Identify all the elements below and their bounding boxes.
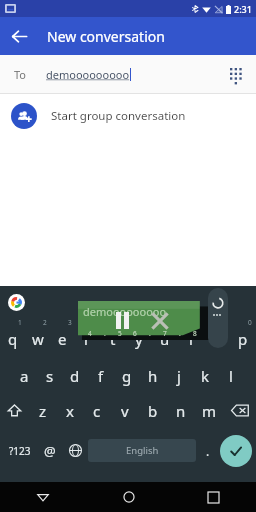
button[interactable]: t bbox=[100, 318, 126, 355]
button[interactable]: Change language bbox=[62, 429, 88, 472]
button[interactable]: j bbox=[166, 355, 192, 392]
button[interactable]: p bbox=[230, 318, 256, 355]
button[interactable]: At sign bbox=[37, 429, 62, 472]
staticText: j bbox=[177, 366, 181, 386]
button[interactable]: h bbox=[140, 355, 166, 392]
staticText: 0 bbox=[248, 318, 252, 327]
button[interactable]: Shift bbox=[0, 392, 29, 429]
staticText: l bbox=[229, 366, 233, 386]
staticText: m bbox=[202, 401, 217, 421]
button[interactable]: q bbox=[0, 318, 25, 355]
staticText: e bbox=[58, 329, 67, 349]
staticText: 6 bbox=[133, 329, 137, 338]
staticText: 8 bbox=[196, 318, 200, 327]
button[interactable]: Recents bbox=[171, 482, 256, 512]
staticText: Start group conversation bbox=[51, 108, 186, 124]
staticText: s bbox=[46, 366, 54, 386]
button[interactable]: English bbox=[88, 439, 196, 462]
staticText: z bbox=[39, 401, 47, 421]
button[interactable]: m bbox=[195, 392, 223, 429]
button[interactable]: l bbox=[218, 355, 244, 392]
staticText: 1 bbox=[18, 318, 22, 327]
button[interactable]: z bbox=[29, 392, 56, 429]
staticText: n bbox=[176, 401, 186, 421]
staticText: v bbox=[121, 401, 129, 421]
staticText: p bbox=[238, 329, 248, 349]
staticText: . bbox=[149, 329, 151, 338]
button[interactable]: o bbox=[204, 318, 230, 355]
staticText: h bbox=[148, 366, 158, 386]
staticText: . bbox=[179, 329, 181, 338]
button[interactable]: u bbox=[152, 318, 178, 355]
staticText: g bbox=[122, 366, 132, 386]
button[interactable]: f bbox=[88, 355, 114, 392]
button[interactable]: g bbox=[114, 355, 140, 392]
staticText: i bbox=[189, 329, 193, 349]
button[interactable]: Back bbox=[0, 482, 86, 512]
staticText: . bbox=[206, 443, 210, 459]
staticText: 5 bbox=[118, 318, 122, 327]
button[interactable]: c bbox=[83, 392, 111, 429]
button[interactable]: d bbox=[62, 355, 88, 392]
button[interactable]: k bbox=[192, 355, 218, 392]
staticText: 7 bbox=[163, 329, 167, 338]
staticText: 5 bbox=[118, 329, 122, 338]
button[interactable]: Google search bbox=[8, 294, 25, 311]
staticText: u bbox=[160, 329, 170, 349]
staticText: 2 bbox=[43, 318, 47, 327]
staticText: New conversation bbox=[47, 27, 165, 46]
button[interactable]: v bbox=[111, 392, 139, 429]
staticText: r bbox=[84, 329, 91, 349]
button[interactable]: n bbox=[167, 392, 195, 429]
staticText: 4 bbox=[88, 329, 92, 338]
button[interactable]: e bbox=[50, 318, 75, 355]
staticText: ?123 bbox=[9, 444, 31, 458]
staticText: k bbox=[201, 366, 210, 386]
staticText: w bbox=[32, 329, 44, 349]
staticText: t bbox=[110, 329, 116, 349]
staticText: 8 bbox=[193, 329, 197, 338]
button[interactable]: x bbox=[56, 392, 83, 429]
button[interactable]: r bbox=[75, 318, 100, 355]
staticText: b bbox=[148, 401, 158, 421]
button[interactable]: b bbox=[139, 392, 167, 429]
staticText: x bbox=[66, 401, 74, 421]
staticText: demooooooooo bbox=[83, 304, 167, 319]
button[interactable]: demooooooooo bbox=[78, 301, 209, 340]
button[interactable]: . bbox=[196, 429, 220, 472]
button[interactable]: w bbox=[25, 318, 50, 355]
staticText: c bbox=[93, 401, 101, 421]
staticText: q bbox=[8, 329, 18, 349]
button[interactable]: i bbox=[178, 318, 204, 355]
button[interactable]: Backspace bbox=[223, 392, 256, 429]
button[interactable]: ?123 bbox=[3, 429, 37, 472]
staticText: demooooooooo bbox=[46, 67, 130, 82]
staticText: . bbox=[104, 329, 106, 338]
button[interactable]: Recorder controls bbox=[208, 288, 228, 348]
staticText: To bbox=[14, 67, 27, 82]
button[interactable]: s bbox=[37, 355, 62, 392]
staticText: o bbox=[212, 329, 222, 349]
staticText: a bbox=[20, 366, 29, 386]
button[interactable]: y bbox=[126, 318, 152, 355]
staticText: d bbox=[70, 366, 80, 386]
staticText: 2:31 bbox=[234, 3, 252, 15]
staticText: @ bbox=[44, 442, 56, 460]
button[interactable]: Send bbox=[220, 435, 252, 467]
button[interactable]: Back bbox=[0, 17, 38, 55]
staticText: f bbox=[98, 366, 104, 386]
button[interactable]: a bbox=[12, 355, 37, 392]
staticText: English bbox=[126, 444, 159, 457]
staticText: y bbox=[135, 329, 143, 349]
button[interactable]: Dialpad bbox=[217, 55, 256, 94]
button[interactable]: Start group conversation bbox=[0, 94, 256, 138]
button[interactable]: Home bbox=[86, 482, 171, 512]
staticText: 3 bbox=[68, 318, 72, 327]
